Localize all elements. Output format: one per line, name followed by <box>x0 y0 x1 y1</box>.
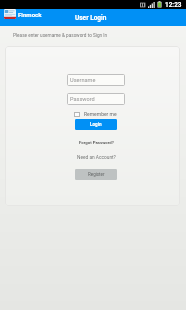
staticText: Need an Account? <box>77 155 116 161</box>
staticText: Please enter username & password to Sign… <box>13 33 108 39</box>
staticText: 12:23 <box>165 1 182 9</box>
staticText: Remember me <box>84 111 117 117</box>
staticText: User Login <box>75 14 107 22</box>
staticText: Login <box>90 122 102 127</box>
button[interactable]: Username <box>67 74 125 86</box>
button[interactable]: Remember me <box>74 111 117 117</box>
staticText: Password <box>70 96 95 103</box>
button[interactable]: Login <box>75 119 117 130</box>
button[interactable]: Forgot Password? <box>67 140 125 145</box>
button[interactable]: Password <box>67 93 125 105</box>
staticText: Finmock <box>18 11 42 18</box>
staticText: Username <box>70 77 96 84</box>
button[interactable]: Register <box>75 169 117 180</box>
staticText: Forgot Password? <box>79 140 114 145</box>
staticText: Register <box>88 172 105 177</box>
button[interactable]: Finmock logo <box>4 9 16 19</box>
